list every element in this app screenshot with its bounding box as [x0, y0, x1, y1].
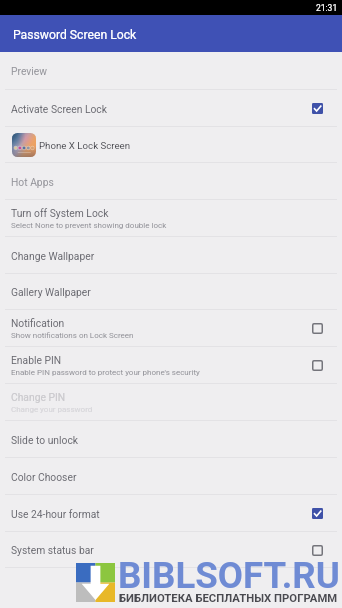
staticText: Notification [11, 317, 65, 329]
other: Unchecked [312, 323, 323, 334]
button[interactable]: Slide to unlock [0, 421, 342, 458]
staticText: Change your password [11, 405, 93, 414]
other: Checked [312, 103, 323, 114]
button[interactable]: Enable PIN [0, 347, 342, 384]
button[interactable]: System status bar [0, 532, 342, 568]
staticText: Password Screen Lock [13, 28, 137, 42]
button[interactable]: Preview [0, 52, 342, 90]
staticText: Show notifications on Lock Screen [11, 331, 134, 340]
staticText: Color Chooser [11, 471, 77, 483]
staticText: БИБЛИОТЕКА БЕСПЛАТНЫХ ПРОГРАММ [119, 592, 342, 605]
staticText: Slide to unlock [11, 434, 78, 446]
other: Checked [312, 508, 323, 519]
staticText: Phone X Lock Screen [39, 140, 131, 151]
button[interactable]: Hot Apps [0, 163, 342, 200]
staticText: Change PIN [11, 391, 66, 403]
button[interactable]: Change Wallpaper [0, 237, 342, 274]
staticText: Preview [11, 65, 47, 77]
staticText: Enable PIN password to protect your phon… [11, 368, 200, 377]
staticText: Enable PIN [11, 354, 62, 366]
button[interactable]: Notification [0, 310, 342, 347]
button[interactable]: Phone X Lock Screen [0, 127, 342, 163]
staticText: System status bar [11, 544, 94, 556]
staticText: Turn off System Lock [11, 207, 109, 219]
button[interactable]: Change PIN [0, 384, 342, 421]
button[interactable]: Password Screen Lock [0, 15, 342, 52]
button[interactable]: Use 24-hour format [0, 495, 342, 532]
staticText: Gallery Wallpaper [11, 286, 91, 298]
staticText: Use 24-hour format [11, 508, 100, 520]
button[interactable]: Turn off System Lock [0, 200, 342, 237]
staticText: Hot Apps [11, 176, 54, 188]
staticText: Change Wallpaper [11, 250, 95, 262]
button[interactable]: Activate Screen Lock [0, 90, 342, 127]
other: Unchecked [312, 545, 323, 556]
button[interactable]: Color Chooser [0, 458, 342, 495]
staticText: BIBLSOFT.RU [118, 554, 342, 597]
staticText: 21:31 [316, 3, 338, 13]
other: Unchecked [312, 360, 323, 371]
staticText: Activate Screen Lock [11, 103, 107, 115]
staticText: Select None to prevent showing double lo… [11, 221, 167, 230]
button[interactable]: Gallery Wallpaper [0, 274, 342, 310]
